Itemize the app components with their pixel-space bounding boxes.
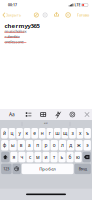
button[interactable]: Camera xyxy=(67,109,77,120)
button[interactable]: ц xyxy=(9,128,15,138)
button[interactable]: Attach file xyxy=(53,109,63,120)
staticText: х xyxy=(79,130,81,136)
button[interactable]: е xyxy=(31,128,38,138)
staticText: Ввод xyxy=(79,166,87,171)
button[interactable]: х xyxy=(77,128,83,138)
button[interactable]: ы xyxy=(9,140,17,150)
button[interactable]: г xyxy=(46,128,53,138)
button[interactable]: л xyxy=(59,140,66,150)
button[interactable]: ъ xyxy=(84,128,91,138)
staticText: ф xyxy=(3,142,7,148)
button[interactable]: о xyxy=(50,140,58,150)
button[interactable]: щ xyxy=(61,128,68,138)
staticText: м xyxy=(36,154,40,160)
staticText: р xyxy=(44,142,47,148)
button[interactable]: More xyxy=(66,10,71,20)
staticText: onelessone xyxy=(4,39,23,44)
button[interactable]: ш xyxy=(54,128,61,138)
button[interactable]: Dismiss keyboard xyxy=(82,109,92,120)
button[interactable]: в xyxy=(18,140,25,150)
staticText: н xyxy=(41,130,44,136)
staticText: LTE xyxy=(74,3,80,7)
staticText: в xyxy=(20,142,23,148)
staticText: ц xyxy=(10,130,13,136)
button[interactable]: э xyxy=(83,140,91,150)
button[interactable]: р xyxy=(42,140,50,150)
staticText: у xyxy=(19,130,21,136)
button[interactable]: п xyxy=(34,140,41,150)
button[interactable]: я xyxy=(10,152,17,162)
button[interactable]: 123 xyxy=(1,164,12,174)
button[interactable]: Shift xyxy=(1,152,9,162)
staticText: Пробел xyxy=(39,166,56,172)
staticText: и xyxy=(44,154,47,160)
button[interactable]: т xyxy=(50,152,58,162)
button[interactable]: и xyxy=(42,152,50,162)
staticText: й xyxy=(3,130,6,136)
staticText: з xyxy=(71,130,73,136)
button[interactable]: н xyxy=(39,128,46,138)
staticText: 00:17 xyxy=(8,3,17,7)
staticText: л xyxy=(61,142,64,148)
staticText: 123 xyxy=(3,166,9,171)
staticText: ш xyxy=(55,130,59,136)
button[interactable]: Share xyxy=(54,10,59,20)
button[interactable]: Aa xyxy=(5,109,19,120)
button[interactable]: Switch keyboard xyxy=(12,164,21,174)
button[interactable]: Delete xyxy=(82,152,91,162)
button[interactable]: й xyxy=(1,128,8,138)
staticText: п xyxy=(36,142,39,148)
button[interactable]: ч xyxy=(18,152,26,162)
button[interactable]: Table xyxy=(38,109,48,120)
button[interactable]: ф xyxy=(1,140,8,150)
staticText: щ xyxy=(63,130,67,136)
staticText: к xyxy=(26,130,29,136)
staticText: д xyxy=(69,142,72,148)
staticText: Закрыть xyxy=(6,12,21,17)
button[interactable]: д xyxy=(67,140,74,150)
button[interactable]: з xyxy=(69,128,76,138)
button[interactable]: б xyxy=(66,152,74,162)
staticText: о xyxy=(53,142,56,148)
staticText: ь xyxy=(60,154,63,160)
button[interactable]: с xyxy=(26,152,34,162)
staticText: э xyxy=(86,142,88,148)
button[interactable]: Готово xyxy=(76,10,92,20)
staticText: ы xyxy=(11,142,15,148)
button[interactable]: Checklist xyxy=(24,109,34,120)
button[interactable]: у xyxy=(16,128,23,138)
staticText: ч xyxy=(20,154,23,160)
button[interactable]: Ввод xyxy=(74,164,91,174)
staticText: rubenbio xyxy=(4,34,19,39)
staticText: ю xyxy=(76,154,80,160)
button[interactable]: ж xyxy=(75,140,83,150)
staticText: “” xyxy=(44,121,48,127)
staticText: е xyxy=(33,130,36,136)
staticText: ъ xyxy=(86,130,89,136)
button[interactable]: а xyxy=(26,140,33,150)
button[interactable]: Undo xyxy=(43,10,47,20)
button[interactable]: Пробел xyxy=(22,164,73,174)
button[interactable]: к xyxy=(24,128,30,138)
button[interactable]: ю xyxy=(74,152,82,162)
staticText: т xyxy=(53,154,55,160)
staticText: Готово xyxy=(77,12,89,17)
staticText: ж xyxy=(77,142,81,148)
button[interactable]: Закрыть xyxy=(0,10,23,20)
button[interactable]: Markup xyxy=(34,10,39,20)
staticText: я xyxy=(12,154,15,160)
staticText: б xyxy=(68,154,71,160)
staticText: musicholsex xyxy=(4,29,26,34)
button[interactable]: м xyxy=(34,152,42,162)
staticText: а xyxy=(28,142,31,148)
staticText: с xyxy=(29,154,31,160)
staticText: г xyxy=(49,130,51,136)
staticText: Aa xyxy=(9,111,15,118)
staticText: chermyy365 xyxy=(4,22,39,30)
button[interactable]: ь xyxy=(58,152,66,162)
